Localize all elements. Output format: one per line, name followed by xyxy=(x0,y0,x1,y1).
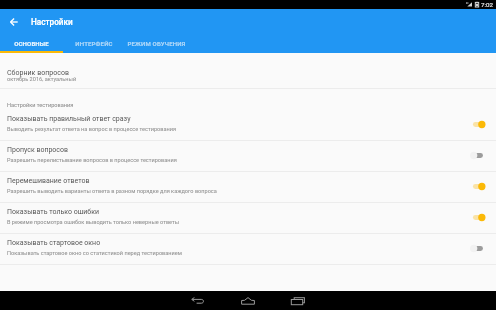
staticText: октябрь 2016, актуальный xyxy=(7,76,77,83)
button[interactable]: Показывать только ошибки xyxy=(0,203,496,233)
staticText: Разрешить выводить варианты ответа в раз… xyxy=(7,188,217,195)
button[interactable]: Сборник вопросов xyxy=(0,53,496,88)
staticText: Настройки xyxy=(31,17,73,27)
button[interactable]: Включено xyxy=(469,178,487,194)
staticText: Выводить результат ответа на вопрос в пр… xyxy=(7,126,176,133)
button[interactable]: Показывать стартовое окно xyxy=(0,234,496,264)
button[interactable]: ОСНОВНЫЕ xyxy=(0,35,63,53)
button[interactable]: Перемешивание ответов xyxy=(0,172,496,202)
button[interactable]: ИНТЕРФЕЙС xyxy=(63,35,125,53)
staticText: ОСНОВНЫЕ xyxy=(14,40,49,47)
button[interactable]: Главный экран xyxy=(228,291,268,310)
button[interactable]: Выключено xyxy=(469,147,487,163)
button[interactable]: РЕЖИМ ОБУЧЕНИЯ xyxy=(125,35,187,53)
staticText: Показывать стартовое окно xyxy=(7,239,101,247)
staticText: Настройки тестирования xyxy=(7,102,74,109)
staticText: Показывать стартовое окно со статистикой… xyxy=(7,250,182,257)
button[interactable]: Включено xyxy=(469,209,487,225)
staticText: Показывать правильный ответ сразу xyxy=(7,115,131,123)
button[interactable]: Выключено xyxy=(469,240,487,256)
staticText: Пропуск вопросов xyxy=(7,146,69,154)
staticText: Разрешить перелистывание вопросов в проц… xyxy=(7,157,177,164)
staticText: ИНТЕРФЕЙС xyxy=(75,40,113,47)
button[interactable]: Назад xyxy=(6,14,22,30)
button[interactable]: Пропуск вопросов xyxy=(0,141,496,171)
staticText: 7:02 xyxy=(481,1,493,8)
button[interactable]: Включено xyxy=(469,116,487,132)
staticText: Показывать только ошибки xyxy=(7,208,100,216)
button[interactable]: Назад xyxy=(178,291,218,310)
button[interactable]: Недавние приложения xyxy=(278,291,318,310)
staticText: Сборник вопросов xyxy=(7,68,69,76)
button[interactable]: Показывать правильный ответ сразу xyxy=(0,110,496,140)
staticText: В режиме просмотра ошибок выводить тольк… xyxy=(7,219,180,226)
staticText: Перемешивание ответов xyxy=(7,177,90,185)
staticText: РЕЖИМ ОБУЧЕНИЯ xyxy=(127,40,186,47)
